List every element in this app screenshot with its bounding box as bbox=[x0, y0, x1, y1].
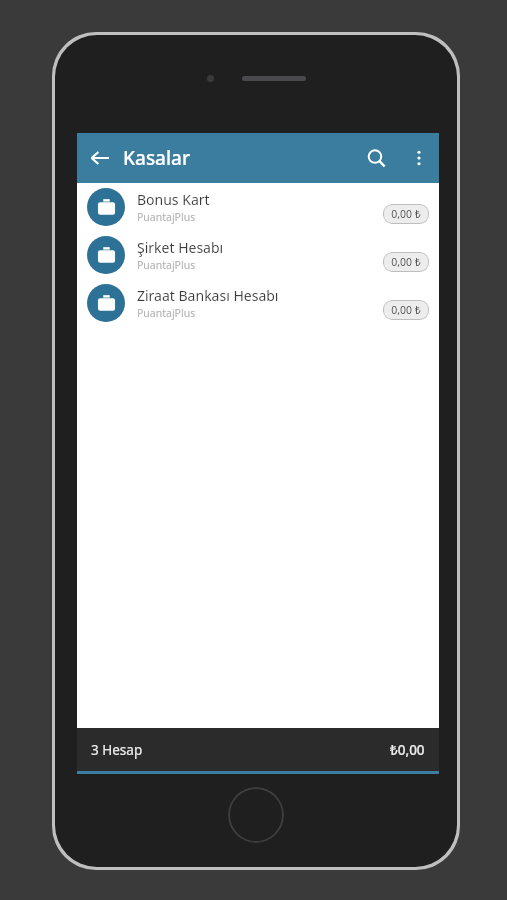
staticText: 3 Hesap bbox=[91, 741, 143, 759]
button[interactable]: Search bbox=[353, 135, 399, 181]
staticText: PuantajPlus bbox=[137, 258, 196, 272]
button[interactable]: Bonus Kart bbox=[77, 183, 439, 231]
staticText: PuantajPlus bbox=[137, 306, 196, 320]
staticText: 0,00 ₺ bbox=[391, 303, 421, 317]
button[interactable]: Ziraat Bankası Hesabı bbox=[77, 279, 439, 327]
staticText: Şirket Hesabı bbox=[137, 238, 224, 257]
staticText: Kasalar bbox=[123, 145, 191, 171]
button[interactable]: Back bbox=[77, 135, 123, 181]
staticText: Ziraat Bankası Hesabı bbox=[137, 286, 279, 305]
staticText: ₺0,00 bbox=[390, 741, 425, 759]
button[interactable]: Şirket Hesabı bbox=[77, 231, 439, 279]
staticText: 0,00 ₺ bbox=[391, 207, 421, 221]
staticText: Bonus Kart bbox=[137, 190, 210, 209]
staticText: 0,00 ₺ bbox=[391, 255, 421, 269]
staticText: PuantajPlus bbox=[137, 210, 196, 224]
button[interactable]: More options bbox=[399, 138, 439, 178]
